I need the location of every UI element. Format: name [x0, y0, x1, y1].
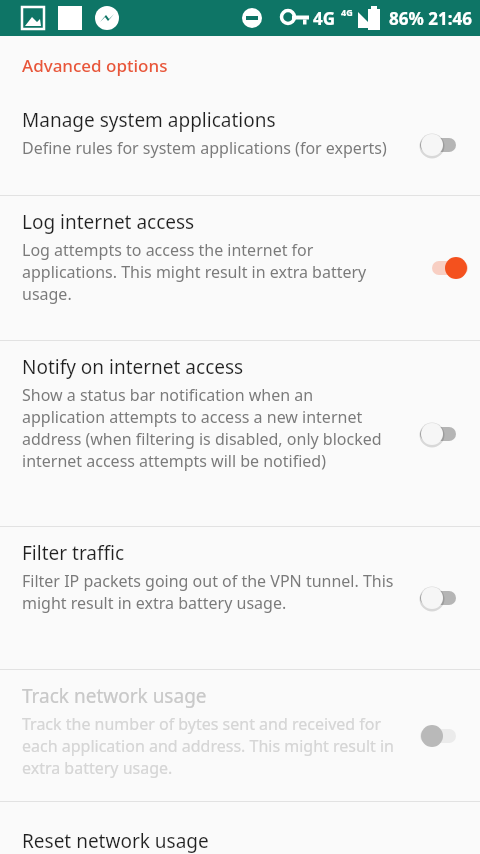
staticText: Track network usage: [22, 683, 207, 709]
button[interactable]: Log internet access: [0, 196, 480, 340]
button[interactable]: Manage system applications: [0, 94, 480, 195]
button[interactable]: Filter traffic: [0, 527, 480, 669]
staticText: Define rules for system applications (fo…: [22, 137, 387, 159]
button[interactable]: Toggle setting: [418, 251, 470, 285]
staticText: Notify on internet access: [22, 354, 244, 380]
staticText: Reset network usage: [22, 828, 209, 854]
button[interactable]: Toggle setting: [418, 128, 470, 162]
staticText: Advanced options: [22, 54, 168, 77]
button[interactable]: Reset network usage: [0, 802, 480, 854]
staticText: Log attempts to access the internet for …: [22, 239, 400, 305]
staticText: Log internet access: [22, 209, 195, 235]
button[interactable]: Toggle setting: [418, 417, 470, 451]
button[interactable]: Track network usage: [0, 670, 480, 801]
staticText: Filter IP packets going out of the VPN t…: [22, 570, 400, 614]
button[interactable]: Toggle setting: [418, 719, 470, 753]
staticText: 86% 21:46: [389, 7, 472, 30]
staticText: Filter traffic: [22, 540, 125, 566]
staticText: Track the number of bytes sent and recei…: [22, 713, 400, 779]
staticText: Show a status bar notification when an a…: [22, 384, 400, 472]
staticText: 4G: [313, 7, 336, 30]
button[interactable]: Notify on internet access: [0, 341, 480, 526]
staticText: Manage system applications: [22, 107, 276, 133]
staticText: 4G: [341, 6, 353, 18]
button[interactable]: Toggle setting: [418, 581, 470, 615]
